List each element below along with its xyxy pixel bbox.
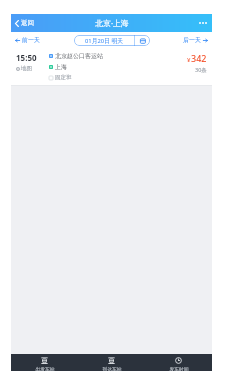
staticText: 前一天: [22, 36, 40, 44]
button[interactable]: 返回: [11, 14, 40, 32]
button[interactable]: 到达车站: [78, 354, 145, 371]
button[interactable]: 15:50: [11, 48, 212, 85]
staticText: ¥: [187, 56, 191, 64]
staticText: 地图: [21, 65, 32, 72]
staticText: 后一天: [183, 36, 201, 44]
staticText: 出发车站: [35, 366, 55, 371]
button[interactable]: More options: [194, 14, 212, 32]
button[interactable]: 前一天: [11, 32, 44, 48]
button[interactable]: Pick date: [135, 35, 150, 46]
staticText: 北京·上海: [95, 18, 129, 29]
button[interactable]: 出发车站: [11, 354, 78, 371]
button[interactable]: 后一天: [179, 32, 212, 48]
staticText: 15:50: [16, 52, 37, 63]
staticText: 01月20日 明天: [85, 37, 123, 45]
staticText: 30条: [195, 66, 207, 74]
staticText: 固定班: [55, 74, 72, 81]
staticText: 342: [191, 52, 207, 64]
staticText: 到达车站: [102, 366, 122, 371]
button[interactable]: 01月20日 明天: [74, 35, 150, 46]
staticText: 返回: [21, 19, 34, 27]
staticText: 上海: [55, 63, 67, 71]
staticText: 北京赵公口客运站: [55, 52, 103, 60]
button[interactable]: 发车时间: [145, 354, 212, 371]
staticText: 发车时间: [169, 366, 189, 371]
